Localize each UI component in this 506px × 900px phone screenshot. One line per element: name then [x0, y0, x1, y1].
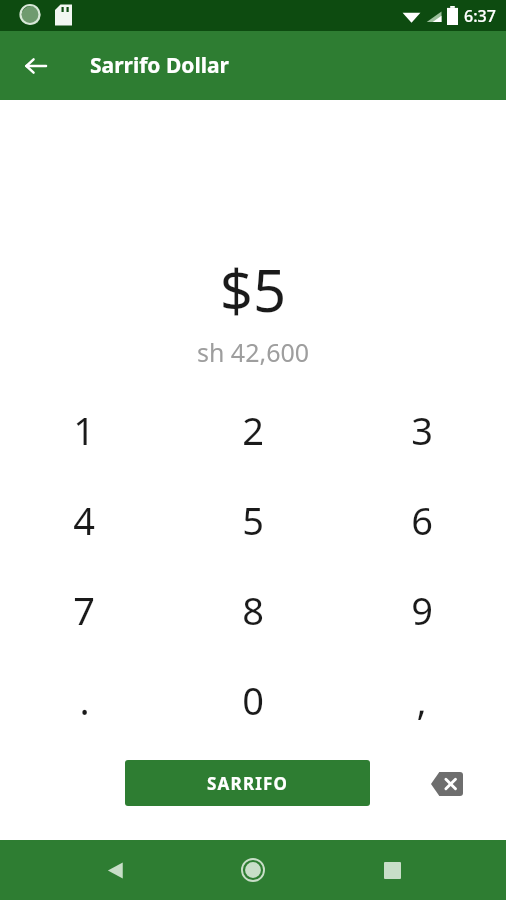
button[interactable]: 5 — [168, 475, 337, 565]
staticText: 1 — [73, 404, 95, 456]
staticText: 3 — [411, 404, 433, 456]
button[interactable]: 6 — [337, 475, 506, 565]
staticText: sh 42,600 — [0, 335, 506, 369]
button[interactable]: Home — [229, 846, 277, 894]
button[interactable]: Back — [91, 846, 139, 894]
staticText: 4 — [73, 494, 95, 546]
staticText: SARRIFO — [207, 772, 289, 795]
staticText: 6 — [411, 494, 433, 546]
button[interactable]: 4 — [0, 475, 168, 565]
staticText: 7 — [73, 584, 95, 636]
button[interactable]: SARRIFO — [125, 760, 370, 806]
button[interactable]: 8 — [168, 565, 337, 655]
staticText: Sarrifo Dollar — [90, 51, 229, 80]
staticText: 0 — [242, 674, 264, 726]
staticText: 9 — [411, 584, 433, 636]
button[interactable]: 0 — [168, 655, 337, 745]
button[interactable]: 2 — [168, 385, 337, 475]
staticText: $5 — [0, 250, 506, 329]
button[interactable]: Backspace — [420, 757, 474, 811]
staticText: . — [79, 674, 90, 726]
button[interactable]: . — [0, 655, 168, 745]
button[interactable]: 7 — [0, 565, 168, 655]
button[interactable]: Back — [12, 42, 60, 90]
staticText: 2 — [242, 404, 264, 456]
staticText: 8 — [242, 584, 264, 636]
staticText: 5 — [242, 494, 264, 546]
button[interactable]: 9 — [337, 565, 506, 655]
button[interactable]: Recent apps — [368, 846, 416, 894]
button[interactable]: , — [337, 655, 506, 745]
staticText: 6:37 — [464, 5, 496, 27]
button[interactable]: 3 — [337, 385, 506, 475]
button[interactable]: 1 — [0, 385, 168, 475]
staticText: , — [416, 674, 427, 726]
